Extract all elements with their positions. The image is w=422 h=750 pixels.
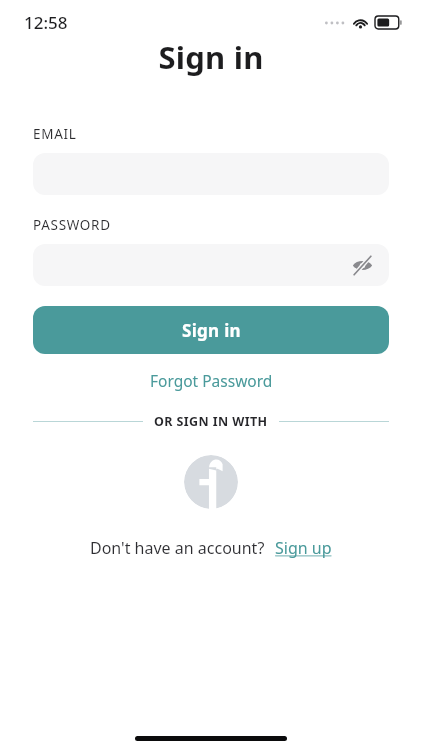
staticText: Forgot Password xyxy=(150,370,273,391)
button[interactable]: Sign up xyxy=(275,537,332,559)
staticText: Sign up xyxy=(275,537,332,559)
button[interactable]: Show password xyxy=(33,244,389,286)
staticText: Sign in xyxy=(182,319,241,342)
staticText: 12:58 xyxy=(24,11,68,34)
staticText: EMAIL xyxy=(33,125,77,143)
button[interactable]: Forgot Password xyxy=(142,366,281,395)
staticText: PASSWORD xyxy=(33,216,111,234)
button[interactable]: Sign in with Facebook xyxy=(184,455,238,509)
staticText: Don't have an account? xyxy=(90,537,265,559)
button[interactable]: Show password xyxy=(347,250,377,280)
button[interactable]: Sign in xyxy=(33,306,389,354)
staticText: OR SIGN IN WITH xyxy=(154,413,268,430)
staticText: Sign in xyxy=(33,36,389,78)
